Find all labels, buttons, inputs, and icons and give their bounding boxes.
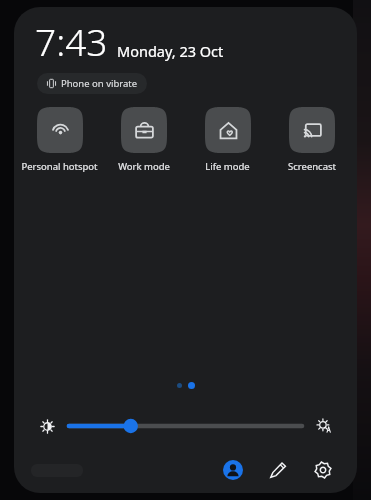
button[interactable]: Work mode (102, 107, 185, 173)
button[interactable]: Life mode (186, 107, 269, 173)
button[interactable]: Screencast (270, 107, 353, 173)
staticText: 7:43 (35, 16, 108, 66)
staticText: Personal hotspot (21, 160, 98, 173)
button[interactable]: Auto brightness (310, 412, 338, 440)
button[interactable] (69, 413, 302, 439)
button[interactable]: Brightness (33, 412, 61, 440)
staticText: Monday, 23 Oct (117, 41, 224, 61)
button[interactable]: Personal hotspot (18, 107, 101, 173)
staticText: Work mode (118, 160, 170, 173)
button[interactable]: Edit tiles (261, 453, 295, 487)
button[interactable]: Phone on vibrate (37, 73, 147, 94)
staticText: Life mode (205, 160, 250, 173)
button[interactable]: User (216, 453, 250, 487)
staticText: Screencast (288, 160, 336, 173)
button[interactable]: Settings (306, 453, 340, 487)
staticText: Phone on vibrate (61, 77, 138, 90)
